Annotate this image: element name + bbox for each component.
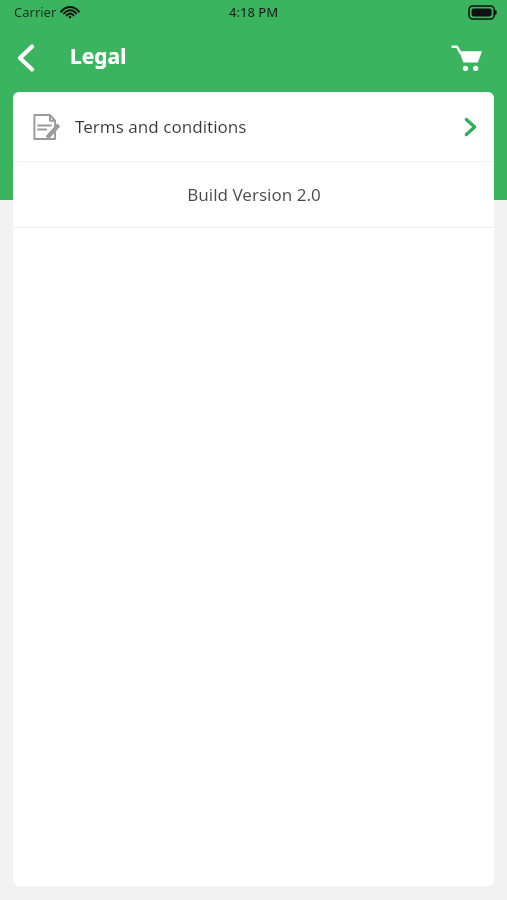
staticText: Terms and conditions	[75, 115, 247, 138]
staticText: Legal	[70, 42, 127, 71]
staticText: Build Version 2.0	[187, 183, 321, 206]
button[interactable]: Cart	[441, 32, 493, 84]
button[interactable]: Back	[0, 30, 52, 86]
staticText: 4:18 PM	[229, 3, 279, 21]
button[interactable]: Terms and conditions	[13, 92, 494, 161]
staticText: Carrier	[14, 3, 57, 21]
